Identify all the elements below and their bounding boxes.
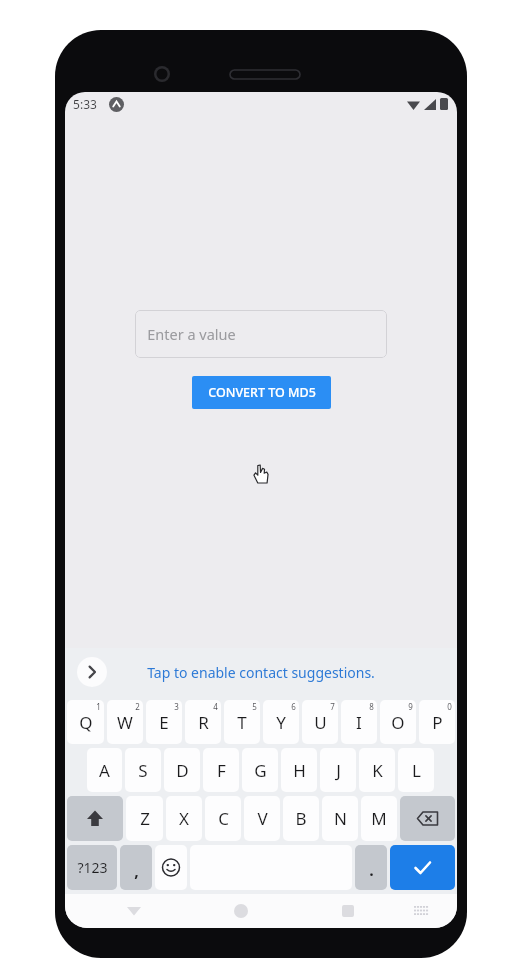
button[interactable]: Enter [390, 845, 455, 890]
staticText: 4 [213, 701, 218, 712]
button[interactable]: N [322, 796, 358, 841]
staticText: K [372, 759, 383, 782]
button[interactable]: Z [126, 796, 163, 841]
staticText: ?123 [77, 858, 108, 877]
staticText: B [295, 807, 307, 830]
staticText: W [117, 711, 133, 734]
staticText: 0 [447, 701, 452, 712]
staticText: N [334, 807, 347, 830]
staticText: 7 [330, 701, 335, 712]
button[interactable]: S [125, 748, 161, 792]
staticText: X [179, 807, 189, 830]
button[interactable]: L [398, 748, 434, 792]
button[interactable]: Shift [67, 796, 123, 841]
staticText: C [218, 807, 229, 830]
button[interactable]: Back [81, 894, 187, 928]
button[interactable]: Home [187, 894, 294, 928]
button[interactable]: ?123 [67, 845, 117, 890]
staticText: G [254, 759, 267, 782]
button[interactable]: J [320, 748, 356, 792]
staticText: D [176, 759, 189, 782]
button[interactable]: Recents [294, 894, 401, 928]
button[interactable]: X [166, 796, 202, 841]
staticText: 5:33 [73, 96, 97, 112]
staticText: L [412, 759, 421, 782]
button[interactable]: B [283, 796, 319, 841]
staticText: M [371, 807, 387, 830]
button[interactable]: Tap to enable contact suggestions. [139, 659, 383, 686]
button[interactable]: O [380, 700, 416, 744]
button[interactable]: H [281, 748, 317, 792]
button[interactable]: M [361, 796, 397, 841]
button[interactable]: V [244, 796, 280, 841]
staticText: 8 [369, 701, 374, 712]
button[interactable]: I [341, 700, 377, 744]
button[interactable]: Y [263, 700, 299, 744]
staticText: V [257, 807, 268, 830]
staticText: 1 [96, 701, 101, 712]
button[interactable]: W [107, 700, 143, 744]
staticText: 5 [252, 701, 257, 712]
button[interactable]: Enter a value [135, 310, 387, 358]
staticText: O [391, 711, 405, 734]
button[interactable]: , [120, 845, 152, 890]
staticText: S [138, 759, 148, 782]
button[interactable]: R [185, 700, 221, 744]
button[interactable]: Expand suggestions [77, 657, 107, 687]
button[interactable]: Backspace [400, 796, 455, 841]
button[interactable]: Emoji [155, 845, 187, 890]
button[interactable]: C [205, 796, 241, 841]
staticText: , [134, 860, 139, 882]
staticText: T [237, 711, 247, 734]
staticText: Enter a value [147, 324, 236, 344]
staticText: I [356, 711, 362, 734]
button[interactable]: U [302, 700, 338, 744]
staticText: 2 [135, 701, 140, 712]
staticText: P [432, 711, 443, 734]
staticText: Tap to enable contact suggestions. [147, 663, 375, 682]
staticText: Z [140, 807, 150, 830]
staticText: J [336, 759, 341, 782]
staticText: 9 [408, 701, 413, 712]
button[interactable]: D [164, 748, 200, 792]
staticText: CONVERT TO MD5 [208, 384, 316, 401]
staticText: 3 [174, 701, 179, 712]
staticText: A [99, 759, 110, 782]
button[interactable]: E [146, 700, 182, 744]
button[interactable]: G [242, 748, 278, 792]
button[interactable]: A [87, 748, 122, 792]
button[interactable]: Q [67, 700, 104, 744]
staticText: E [159, 711, 169, 734]
button[interactable]: CONVERT TO MD5 [192, 376, 331, 409]
button[interactable]: . [355, 845, 387, 890]
staticText: 6 [291, 701, 296, 712]
staticText: Y [276, 711, 286, 734]
button[interactable]: F [203, 748, 239, 792]
staticText: R [198, 711, 209, 734]
button[interactable]: K [359, 748, 395, 792]
staticText: H [293, 759, 306, 782]
staticText: F [217, 759, 226, 782]
staticText: Q [79, 711, 93, 734]
staticText: . [369, 859, 374, 881]
button[interactable]: T [224, 700, 260, 744]
button[interactable]: P [419, 700, 455, 744]
button[interactable]: Switch keyboard [401, 894, 441, 928]
staticText: U [314, 711, 327, 734]
